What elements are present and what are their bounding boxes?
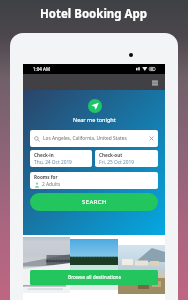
staticText: Check-out xyxy=(99,152,123,158)
staticText: Rooms for xyxy=(34,174,58,180)
button[interactable]: Check-out xyxy=(95,150,158,167)
button[interactable]: Browse all destinations xyxy=(30,270,158,285)
staticText: 1:04 AM xyxy=(33,66,51,72)
staticText: Los Angeles, California, United States xyxy=(43,135,127,142)
button[interactable]: Menu xyxy=(147,74,163,90)
staticText: Check-in xyxy=(34,152,54,158)
staticText: SEARCH xyxy=(82,198,107,206)
button[interactable]: Check-in xyxy=(30,150,92,167)
staticText: Thu, 24 Oct 2019 xyxy=(34,159,72,166)
button[interactable]: SEARCH xyxy=(30,193,158,211)
button[interactable]: Near me tonight xyxy=(73,99,116,123)
staticText: Browse all destinations xyxy=(68,274,121,281)
staticText: Hotel Booking App xyxy=(40,6,148,22)
staticText: Fri, 25 Oct 2019 xyxy=(99,159,134,166)
staticText: Near me tonight xyxy=(73,116,116,123)
staticText: 2 Adults xyxy=(42,181,61,188)
button[interactable]: Los Angeles, California, United States xyxy=(30,130,158,147)
button[interactable]: Rooms for xyxy=(30,172,158,189)
